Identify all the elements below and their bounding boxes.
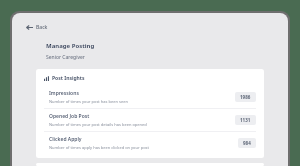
staticText: Senior Caregiver — [46, 54, 85, 61]
button[interactable]: Back — [24, 22, 50, 33]
button[interactable]: Impressions — [36, 86, 264, 108]
staticText: Back — [36, 24, 48, 31]
other: Back — [26, 24, 33, 31]
button[interactable]: Opened Job Post — [36, 109, 264, 131]
staticText: 984 — [243, 140, 251, 146]
staticText: Clicked Apply — [49, 136, 82, 143]
staticText: Number of times your post details has be… — [49, 122, 147, 127]
staticText: Number of times apply has been clicked o… — [49, 145, 149, 150]
staticText: 1131 — [240, 117, 251, 123]
staticText: Impressions — [49, 90, 79, 97]
staticText: Manage Posting — [46, 42, 95, 50]
staticText: 1986 — [240, 94, 251, 100]
staticText: Number of times your post has been seen — [49, 99, 128, 104]
staticText: Opened Job Post — [49, 113, 90, 120]
staticText: Post Insights — [52, 75, 85, 82]
button[interactable]: Clicked Apply — [36, 132, 264, 154]
